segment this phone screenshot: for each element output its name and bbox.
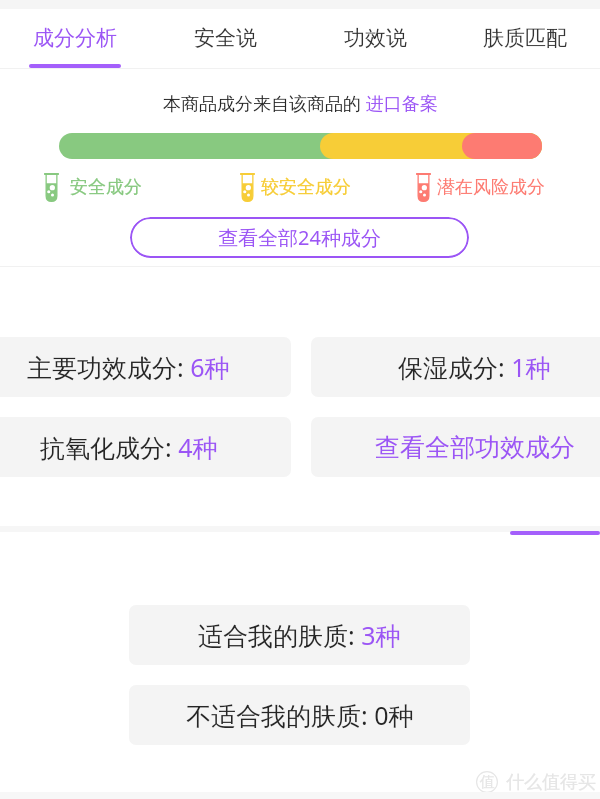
staticText: 不适合我的肤质: 0种 bbox=[186, 698, 414, 732]
button[interactable]: 适合我的肤质: 3种 bbox=[129, 605, 470, 665]
staticText: 适合我的肤质: 3种 bbox=[198, 618, 401, 652]
staticText: 功效说 bbox=[344, 25, 407, 51]
staticText: 查看全部功效成分 bbox=[375, 432, 575, 463]
staticText: 什么值得买 bbox=[506, 771, 596, 794]
staticText: 安全成分 bbox=[70, 176, 142, 199]
staticText: 肤质匹配 bbox=[483, 25, 567, 51]
staticText: 值 bbox=[480, 773, 495, 792]
button[interactable]: 功效说 bbox=[300, 9, 450, 68]
button[interactable]: 不适合我的肤质: 0种 bbox=[129, 685, 470, 745]
button[interactable]: 保湿成分: 1种 bbox=[311, 337, 600, 397]
button[interactable]: 查看全部24种成分 bbox=[130, 217, 469, 258]
button[interactable]: 安全成分 bbox=[44, 173, 142, 202]
button[interactable]: 抗氧化成分: 4种 bbox=[0, 417, 291, 477]
button[interactable]: 肤质匹配 bbox=[450, 9, 600, 68]
button[interactable]: 较安全成分 bbox=[240, 173, 351, 202]
button[interactable]: 主要功效成分: 6种 bbox=[0, 337, 291, 397]
staticText: 保湿成分: 1种 bbox=[398, 350, 551, 384]
button[interactable]: 成分分析 bbox=[0, 9, 150, 68]
button[interactable]: 查看全部功效成分 bbox=[311, 417, 600, 477]
staticText: 成分分析 bbox=[33, 25, 117, 51]
button[interactable]: 安全说 bbox=[150, 9, 300, 68]
staticText: 潜在风险成分 bbox=[437, 176, 545, 199]
staticText: 较安全成分 bbox=[261, 176, 351, 199]
staticText: 安全说 bbox=[194, 25, 257, 51]
staticText: 抗氧化成分: 4种 bbox=[40, 430, 218, 464]
staticText: 本商品成分来自该商品的 进口备案 bbox=[163, 91, 438, 115]
staticText: 主要功效成分: 6种 bbox=[27, 350, 230, 384]
button[interactable]: 潜在风险成分 bbox=[416, 173, 545, 202]
staticText: 查看全部24种成分 bbox=[218, 224, 381, 251]
